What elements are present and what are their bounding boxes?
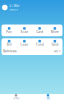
- button[interactable]: Pay: [1, 27, 17, 34]
- button[interactable]: Bill: [1, 40, 17, 46]
- staticText: Loan: [20, 43, 28, 46]
- button[interactable]: Card: [32, 27, 47, 34]
- staticText: Fund: [36, 43, 44, 46]
- staticText: Gold: [51, 43, 58, 46]
- button[interactable]: Services: [1, 49, 62, 53]
- staticText: Li Wei: [9, 4, 19, 8]
- staticText: More: [51, 30, 59, 34]
- staticText: Member: [9, 8, 18, 11]
- button[interactable]: Me: [32, 94, 64, 100]
- button[interactable]: Home: [0, 94, 32, 100]
- button[interactable]: Gold: [47, 40, 62, 46]
- button[interactable]: Scan: [17, 27, 32, 34]
- button[interactable]: Fund: [32, 40, 47, 46]
- staticText: Services: [3, 49, 17, 53]
- button[interactable]: More: [47, 27, 62, 34]
- staticText: Home: [13, 97, 19, 100]
- staticText: All >: [54, 50, 61, 53]
- staticText: Card: [36, 30, 43, 34]
- staticText: Pay: [6, 30, 12, 34]
- staticText: Bill: [7, 43, 12, 46]
- staticText: Scan: [20, 30, 28, 34]
- button[interactable]: Loan: [17, 40, 32, 46]
- staticText: Me: [46, 97, 49, 100]
